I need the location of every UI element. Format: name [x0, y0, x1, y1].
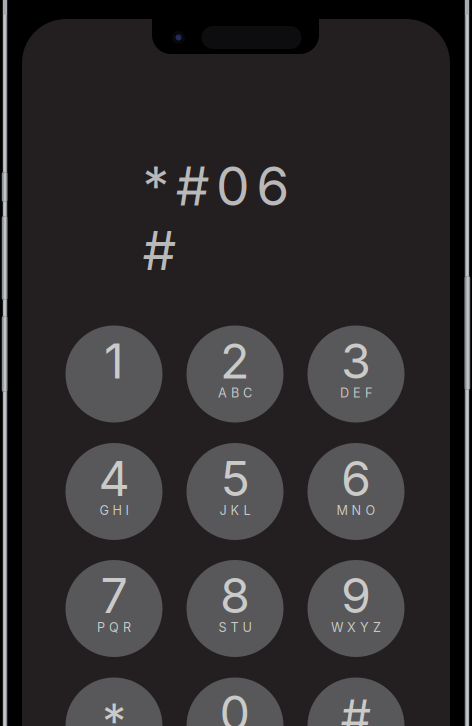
button[interactable]: #: [307, 677, 404, 726]
button[interactable]: 6: [307, 443, 404, 540]
staticText: 5: [220, 449, 249, 508]
staticText: *: [102, 692, 126, 726]
staticText: A B C: [218, 385, 252, 401]
button[interactable]: Volume Down: [2, 316, 7, 392]
staticText: 6: [341, 449, 371, 508]
button[interactable]: 7: [65, 560, 162, 657]
button[interactable]: Volume Up: [2, 216, 7, 300]
staticText: 9: [341, 566, 371, 625]
staticText: 0: [219, 684, 250, 726]
staticText: P Q R: [97, 620, 131, 635]
button[interactable]: 3: [307, 325, 404, 422]
button[interactable]: 8: [186, 560, 283, 657]
staticText: J K L: [219, 503, 250, 518]
button[interactable]: 5: [186, 443, 283, 540]
staticText: 4: [98, 449, 129, 508]
staticText: 3: [341, 332, 371, 390]
staticText: D E F: [340, 385, 372, 401]
button[interactable]: *: [65, 677, 162, 726]
staticText: M N O: [336, 503, 375, 518]
staticText: #: [340, 688, 371, 726]
button[interactable]: 4: [65, 443, 162, 540]
button[interactable]: 2: [186, 325, 283, 422]
staticText: S T U: [218, 620, 251, 635]
button[interactable]: 1: [65, 325, 162, 422]
staticText: 8: [220, 566, 250, 625]
staticText: G H I: [99, 503, 128, 518]
staticText: W X Y Z: [331, 620, 381, 635]
staticText: 7: [100, 566, 127, 625]
staticText: *#06#: [143, 154, 329, 218]
button[interactable]: Ring/Silent switch: [2, 172, 7, 202]
button[interactable]: 9: [307, 560, 404, 657]
button[interactable]: 0: [186, 677, 283, 726]
staticText: 1: [104, 332, 124, 390]
button[interactable]: Side Button: [465, 276, 470, 390]
staticText: 2: [220, 332, 250, 390]
